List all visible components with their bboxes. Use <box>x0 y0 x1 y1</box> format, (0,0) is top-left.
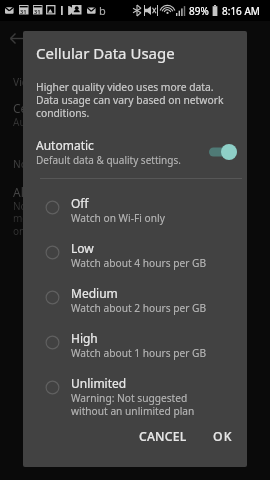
button[interactable]: Automatic toggle <box>209 143 245 161</box>
staticText: OK <box>213 428 233 445</box>
staticText: Notifications <box>13 157 75 171</box>
button[interactable]: High <box>23 326 247 370</box>
staticText: Watch about 4 hours per GB <box>71 256 207 270</box>
button[interactable]: Low <box>23 236 247 280</box>
staticText: Watch about 2 hours per GB <box>71 301 207 315</box>
staticText: High <box>71 330 98 346</box>
staticText: Watch about 1 hours per GB <box>71 346 207 360</box>
staticText: 31 <box>34 8 41 16</box>
staticText: Higher quality video uses more data. Dat… <box>36 80 224 120</box>
staticText: Automatic <box>36 137 94 153</box>
staticText: 31 <box>20 8 27 16</box>
staticText: Low <box>71 240 94 256</box>
button[interactable]: Unlimited <box>23 371 247 415</box>
button[interactable]: Back <box>5 26 29 50</box>
staticText: Off <box>71 195 89 211</box>
staticText: Medium <box>71 285 118 301</box>
staticText: Unlimited <box>71 375 127 391</box>
button[interactable]: OK <box>202 423 244 449</box>
staticText: Default data & quality settings. <box>36 153 181 167</box>
staticText: 8:16 AM <box>222 4 260 18</box>
staticText: Notify me about new movies and shows on … <box>13 199 112 238</box>
staticText: Warning: Not suggested without an unlimi… <box>71 391 195 418</box>
button[interactable]: Medium <box>23 281 247 325</box>
staticText: b <box>99 3 106 18</box>
staticText: Video quality <box>13 75 76 89</box>
staticText: 89% <box>189 4 209 18</box>
button[interactable]: Off <box>23 191 247 235</box>
button[interactable]: Automatic <box>23 134 247 170</box>
staticText: CANCEL <box>139 428 187 445</box>
staticText: Allow Notifications <box>13 184 118 200</box>
staticText: Cellular Data Usage <box>36 43 175 63</box>
staticText: Cellular Data Usage <box>13 100 124 116</box>
button[interactable]: CANCEL <box>134 423 192 449</box>
staticText: Automatic <box>13 115 62 129</box>
staticText: Watch on Wi-Fi only <box>71 211 165 225</box>
